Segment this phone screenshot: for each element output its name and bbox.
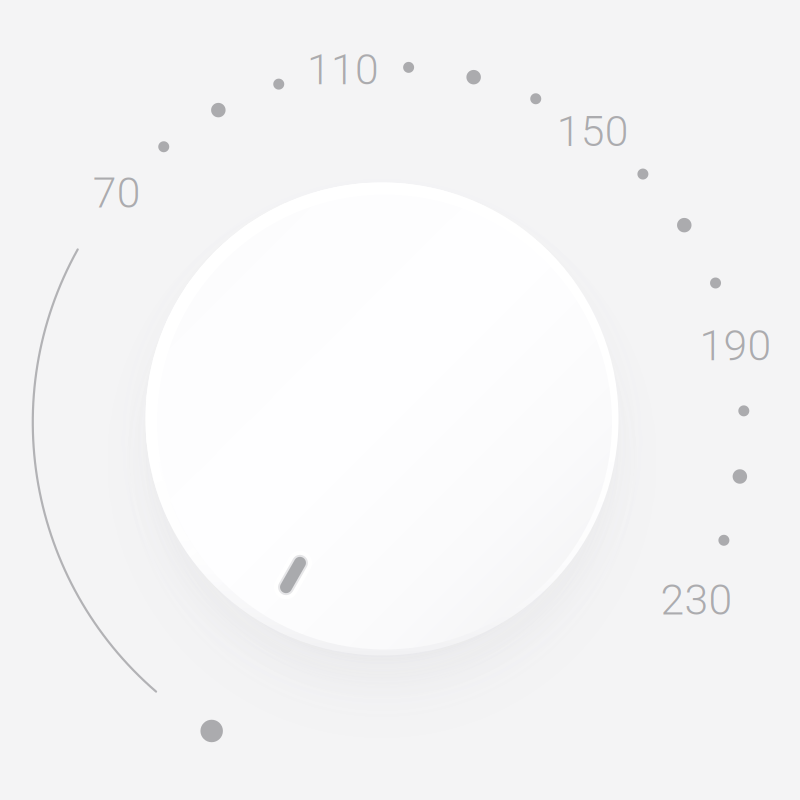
staticText: 190 [700,321,772,371]
staticText: 70 [93,168,141,218]
staticText: 150 [557,106,629,156]
staticText: 230 [660,575,732,625]
button[interactable]: Temperature dial [105,142,658,695]
staticText: 110 [307,45,379,95]
